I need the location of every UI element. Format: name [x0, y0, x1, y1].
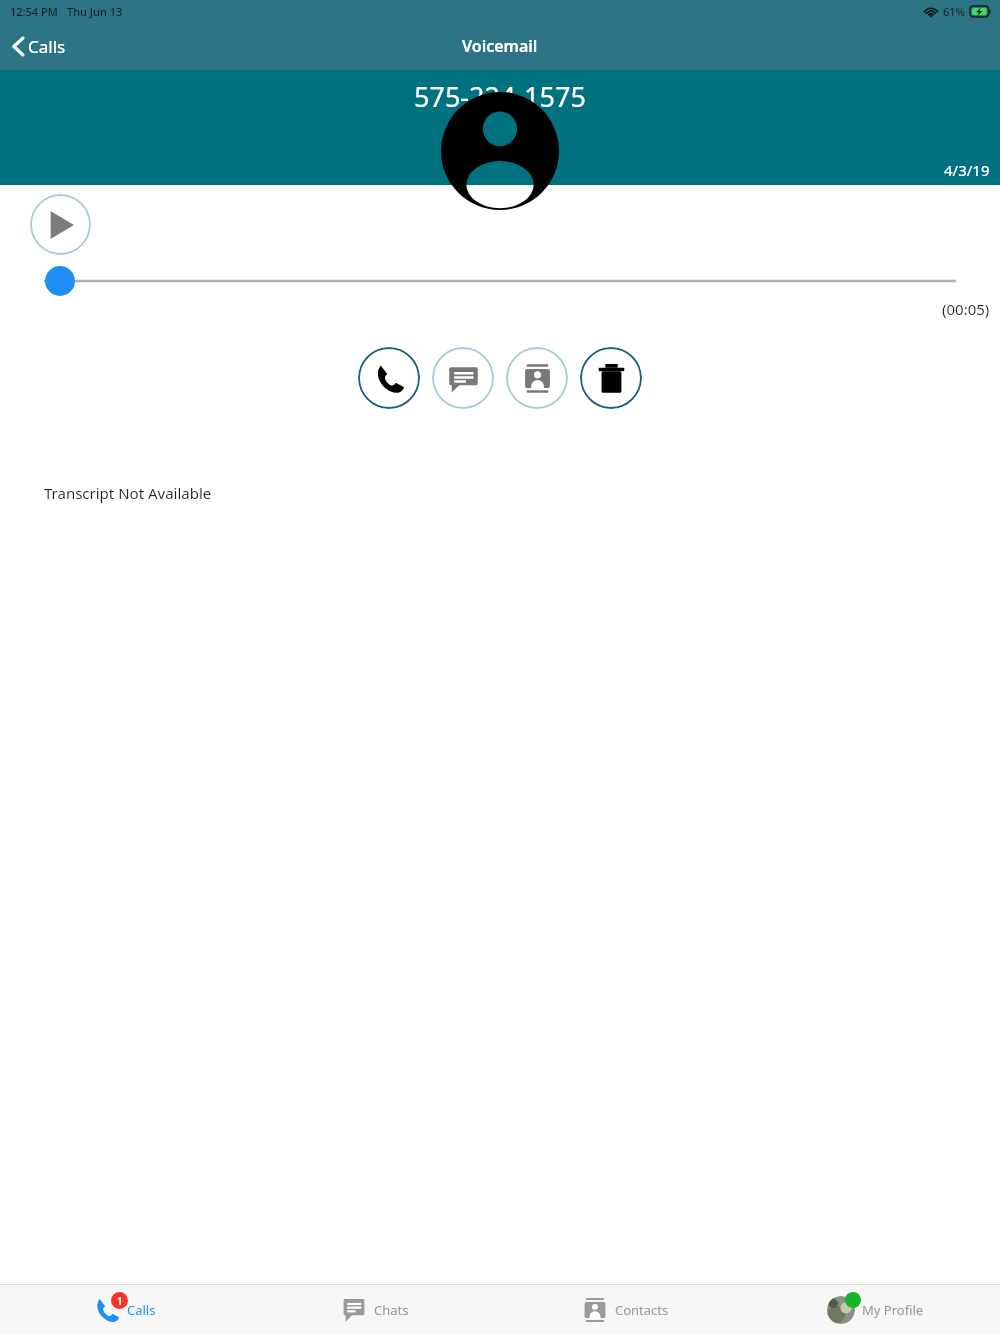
button[interactable]: Chats: [250, 1285, 500, 1334]
button[interactable]: 1: [0, 1285, 250, 1334]
button[interactable]: Play: [30, 194, 91, 255]
button[interactable]: Contacts: [500, 1285, 750, 1334]
staticText: Thu Jun 13: [67, 4, 123, 19]
button[interactable]: Call: [358, 347, 420, 409]
staticText: 12:54 PM: [10, 4, 58, 19]
staticText: Voicemail: [462, 35, 538, 57]
button[interactable]: Playback position: [0, 265, 1000, 297]
button[interactable]: Contact: [506, 347, 568, 409]
staticText: Chats: [374, 1301, 409, 1319]
staticText: Calls: [127, 1301, 156, 1319]
button[interactable]: Calls: [0, 27, 80, 66]
staticText: Transcript Not Available: [44, 483, 212, 503]
staticText: Contacts: [615, 1301, 669, 1319]
staticText: 4/3/19: [944, 160, 990, 180]
button[interactable]: My Profile: [750, 1285, 1000, 1334]
staticText: Calls: [28, 35, 66, 58]
staticText: 61%: [943, 4, 965, 19]
button[interactable]: Message: [432, 347, 494, 409]
staticText: 1: [117, 1294, 123, 1308]
staticText: My Profile: [862, 1301, 924, 1319]
staticText: (00:05): [942, 299, 990, 319]
staticText: 575-224-1575: [414, 78, 586, 115]
button[interactable]: Delete: [580, 347, 642, 409]
